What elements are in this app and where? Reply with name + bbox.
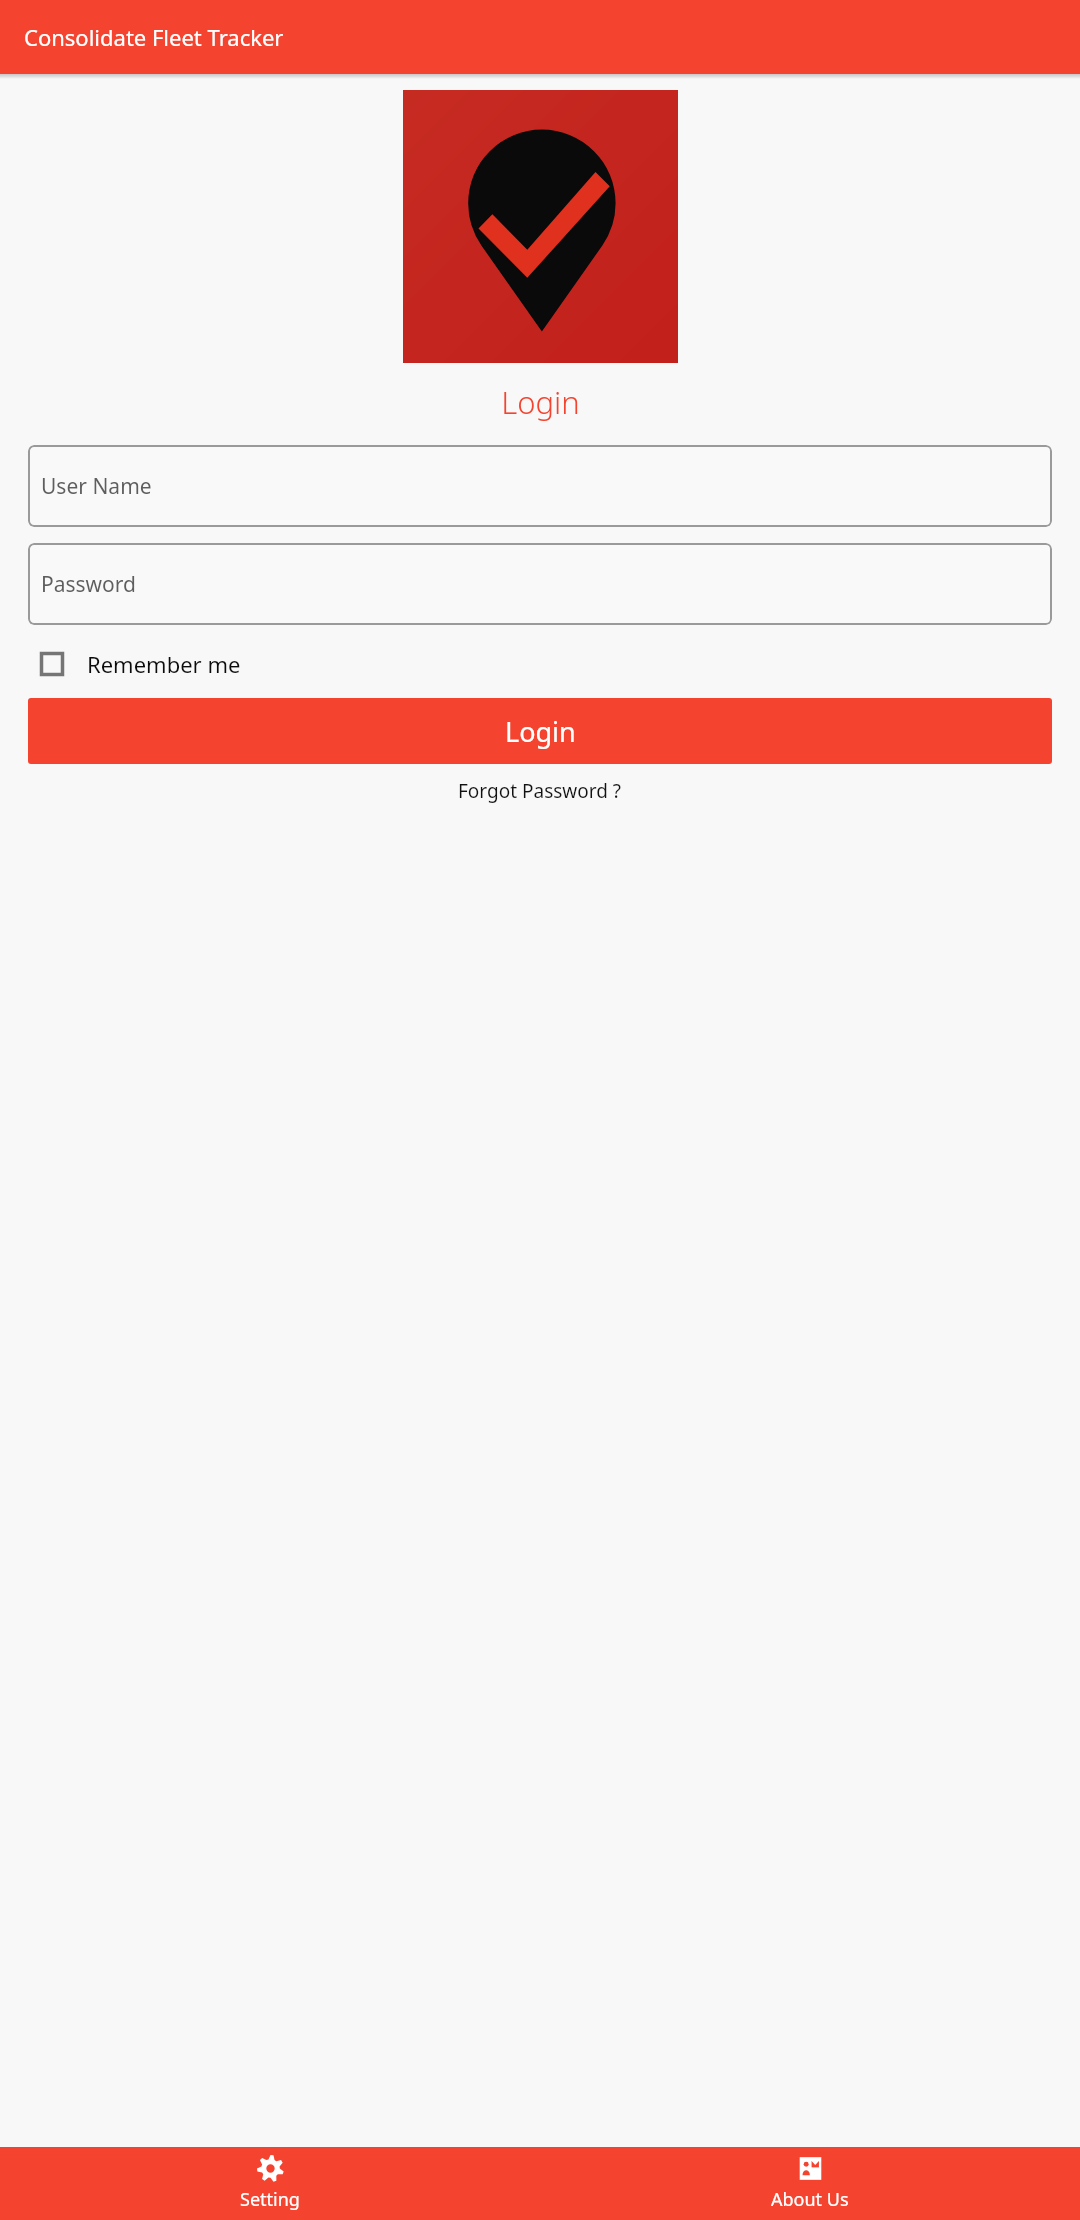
button[interactable]: Remember me: [28, 638, 1052, 690]
staticText: Consolidate Fleet Tracker: [24, 22, 284, 52]
button[interactable]: Setting: [0, 2147, 540, 2220]
staticText: Remember me: [87, 649, 241, 679]
staticText: User Name: [41, 472, 152, 501]
button[interactable]: Login: [28, 698, 1052, 764]
button[interactable]: Password: [28, 543, 1052, 625]
staticText: Login: [505, 713, 576, 750]
button[interactable]: About Us: [540, 2147, 1080, 2220]
staticText: Setting: [240, 2187, 300, 2212]
button[interactable]: User Name: [28, 445, 1052, 527]
button[interactable]: Forgot Password ?: [458, 778, 622, 804]
staticText: Password: [41, 570, 136, 599]
staticText: About Us: [771, 2187, 849, 2212]
staticText: Login: [501, 381, 580, 423]
